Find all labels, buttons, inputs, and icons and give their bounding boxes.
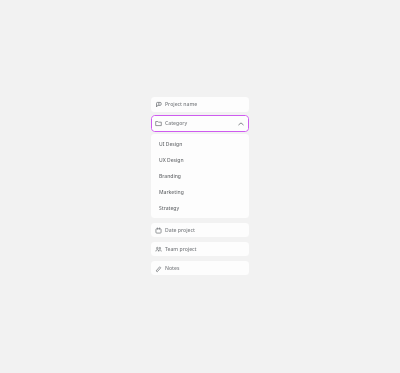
staticText: Category xyxy=(165,120,188,127)
button[interactable]: Notes field xyxy=(151,261,249,275)
staticText: Team project xyxy=(165,246,197,253)
button[interactable]: Project name field xyxy=(151,97,249,112)
button[interactable]: Team project field xyxy=(151,242,249,256)
button[interactable]: Strategy xyxy=(151,200,249,216)
staticText: Notes xyxy=(165,265,180,272)
staticText: UX Design xyxy=(159,157,184,164)
staticText: Project name xyxy=(165,101,198,108)
staticText: UI Design xyxy=(159,141,183,148)
button[interactable]: Date project field xyxy=(151,223,249,237)
staticText: Date project xyxy=(165,227,195,234)
button[interactable]: UI Design xyxy=(151,136,249,152)
button[interactable]: Marketing xyxy=(151,184,249,200)
staticText: Branding xyxy=(159,173,181,180)
staticText: Strategy xyxy=(159,205,180,212)
staticText: Marketing xyxy=(159,189,184,196)
button[interactable]: Category, collapse xyxy=(151,115,249,132)
button[interactable]: Branding xyxy=(151,168,249,184)
button[interactable]: UX Design xyxy=(151,152,249,168)
